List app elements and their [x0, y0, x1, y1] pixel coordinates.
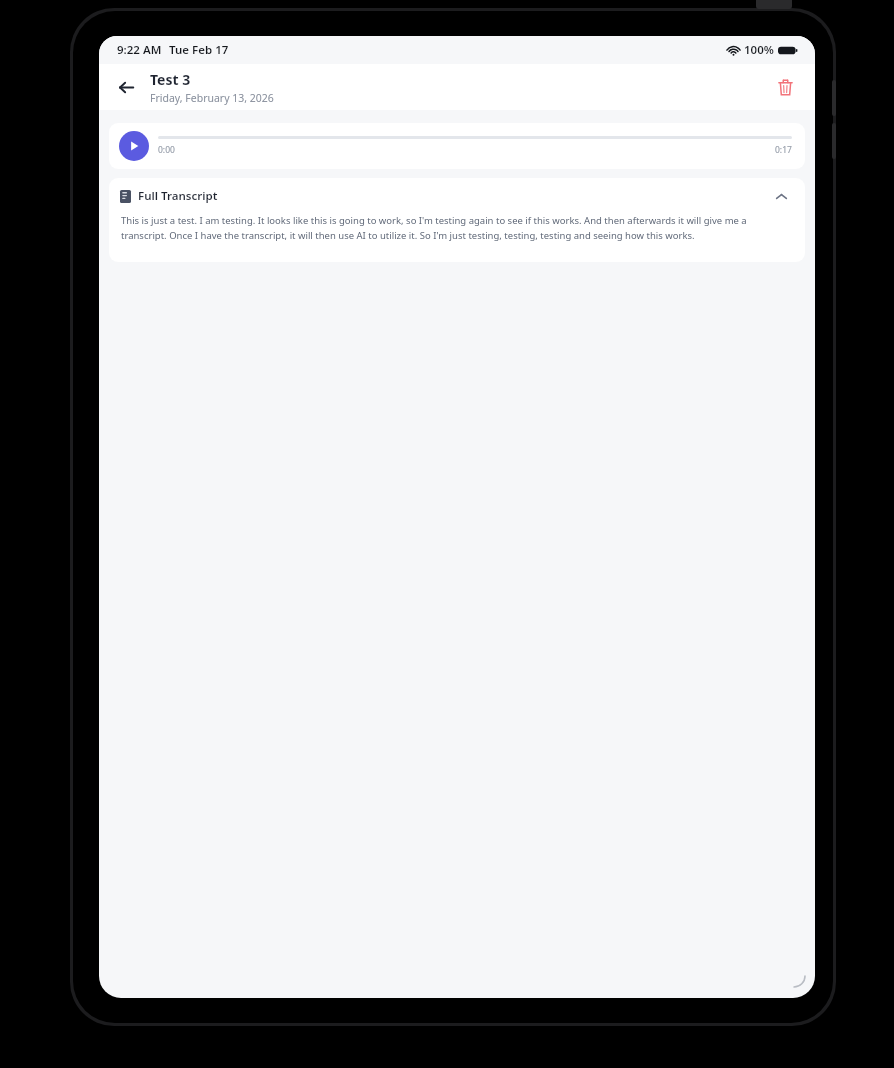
staticText: Test 3 [150, 70, 191, 89]
staticText: 0:17 [775, 144, 792, 156]
staticText: This is just a test. I am testing. It lo… [121, 214, 791, 242]
staticText: Tue Feb 17 [169, 42, 229, 58]
button[interactable]: Play [119, 131, 149, 161]
staticText: 0:00 [158, 144, 175, 156]
staticText: 100% [744, 42, 774, 58]
button[interactable]: Full Transcript [109, 178, 805, 214]
staticText: Full Transcript [138, 188, 218, 204]
staticText: 9:22 AM [117, 42, 162, 58]
button[interactable]: Back [111, 72, 141, 102]
button[interactable]: Delete [769, 71, 801, 103]
other: Collapse [770, 185, 792, 207]
staticText: Friday, February 13, 2026 [150, 91, 274, 105]
